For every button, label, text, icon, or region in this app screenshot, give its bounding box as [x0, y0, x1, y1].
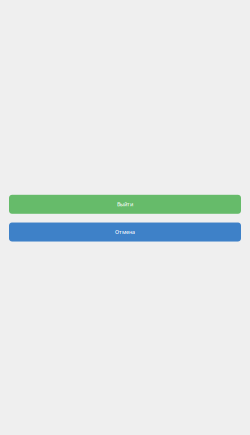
button[interactable]: Выйти: [9, 195, 241, 214]
button[interactable]: Отмена: [9, 222, 241, 241]
staticText: Выйти: [117, 201, 133, 208]
staticText: Отмена: [115, 228, 135, 236]
